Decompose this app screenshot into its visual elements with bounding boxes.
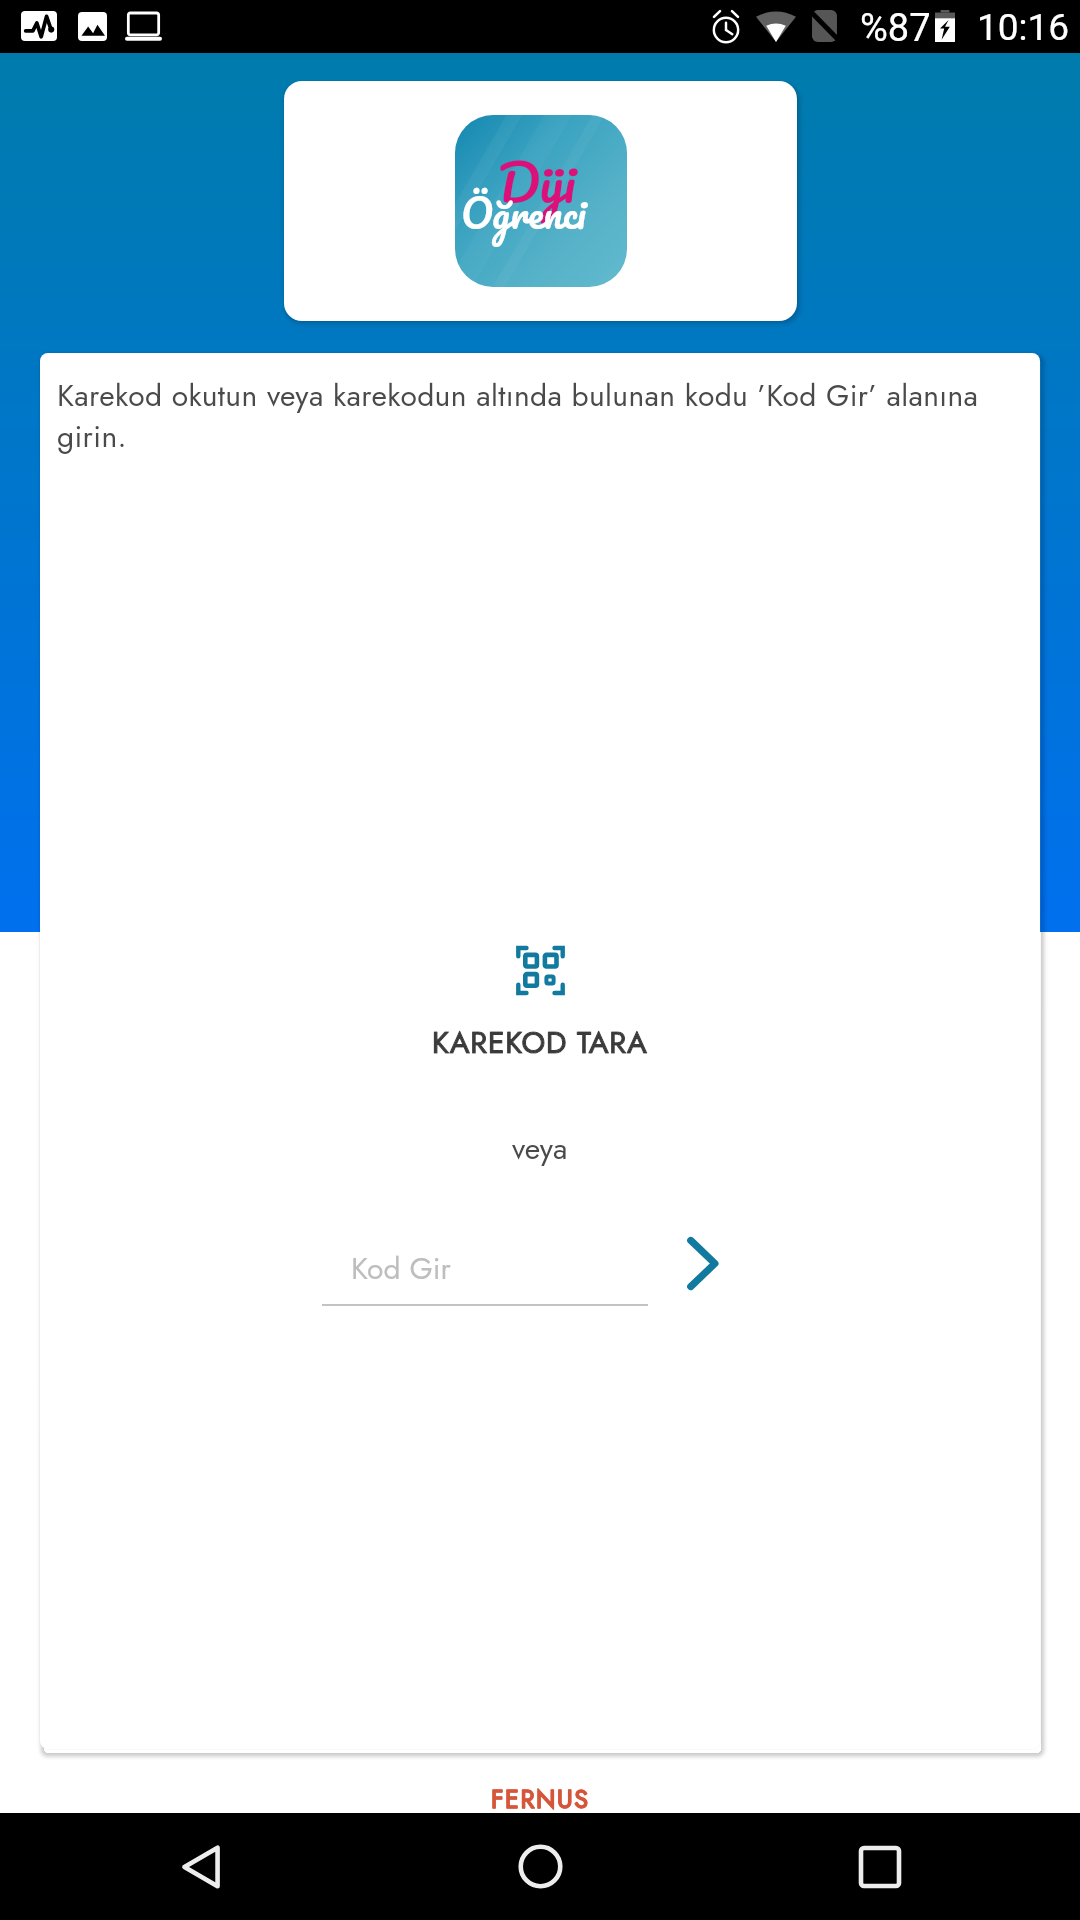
button[interactable]: Diji — [284, 81, 797, 321]
staticText: 10:16 — [977, 6, 1070, 49]
button[interactable]: KAREKOD TARA — [410, 942, 670, 1064]
staticText: Diji — [498, 138, 575, 226]
staticText: veya — [512, 1127, 568, 1170]
staticText: Karekod okutun veya karekodun altında bu… — [57, 374, 1005, 459]
button[interactable]: Kod Gir — [351, 1247, 451, 1290]
staticText: Öğrenci — [461, 178, 586, 246]
button[interactable]: Recents — [810, 1813, 950, 1920]
staticText: FERNUS — [491, 1781, 590, 1817]
button[interactable]: Back — [131, 1813, 271, 1920]
button[interactable]: Home — [470, 1813, 610, 1920]
button[interactable]: Kodu gönder — [665, 1227, 739, 1299]
staticText: KAREKOD TARA — [432, 1021, 648, 1064]
staticText: %87 — [860, 6, 931, 51]
staticText: FERNUS — [491, 1781, 590, 1817]
staticText: KAREKOD TARA — [432, 1021, 648, 1064]
